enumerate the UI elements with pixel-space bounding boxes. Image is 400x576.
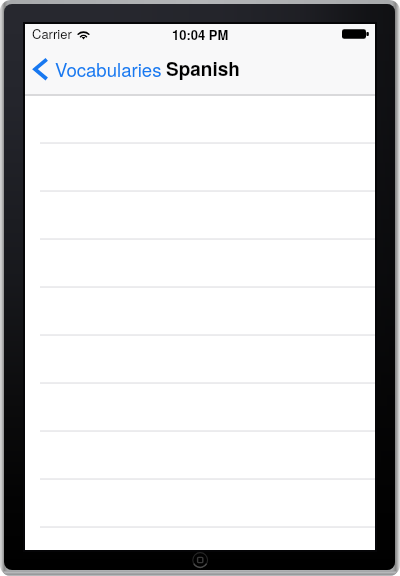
button[interactable]: [25, 96, 375, 144]
button[interactable]: [25, 240, 375, 288]
other: Home: [184, 544, 214, 574]
button[interactable]: [25, 384, 375, 432]
other: Back: [29, 54, 49, 84]
button[interactable]: [25, 288, 375, 336]
staticText: Carrier: [32, 24, 72, 43]
staticText: Spanish: [166, 55, 240, 82]
staticText: 10:04 PM: [172, 25, 229, 44]
button[interactable]: [25, 336, 375, 384]
button[interactable]: [25, 480, 375, 528]
button[interactable]: [25, 432, 375, 480]
button[interactable]: [25, 192, 375, 240]
button[interactable]: Back: [29, 54, 162, 84]
staticText: Vocabularies: [55, 56, 162, 83]
button[interactable]: [25, 144, 375, 192]
